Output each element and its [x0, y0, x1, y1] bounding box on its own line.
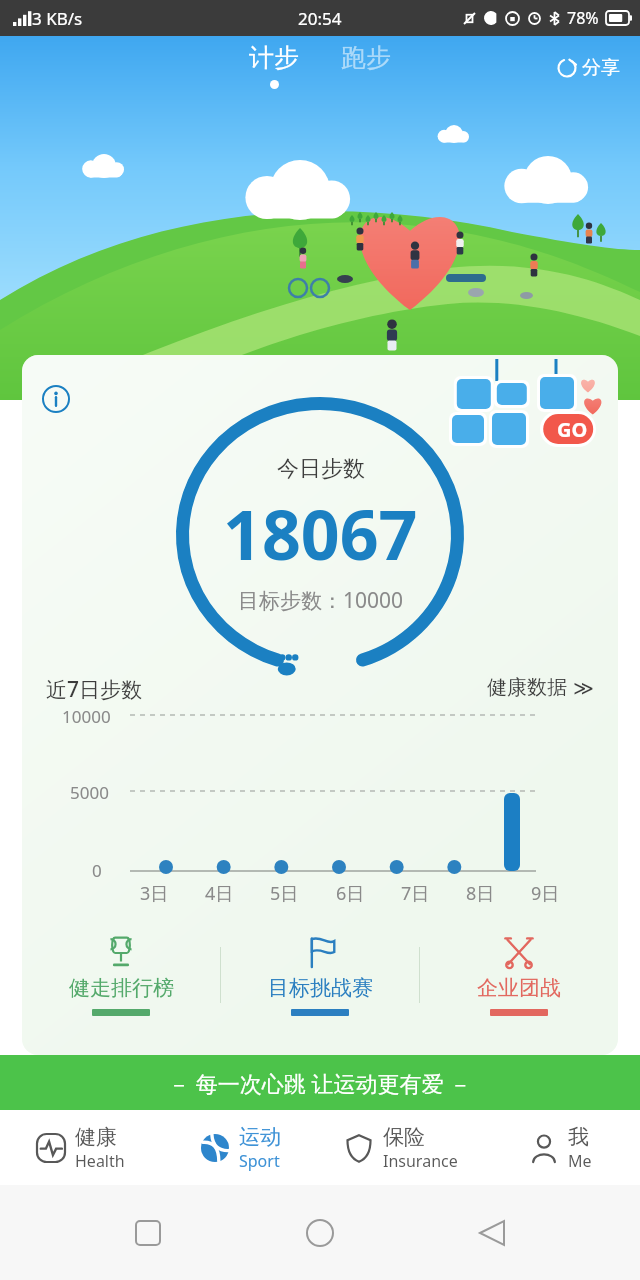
staticText: 近7日步数	[46, 675, 143, 704]
button[interactable]: 健走排行榜	[22, 929, 220, 1022]
staticText: 20:54	[298, 7, 342, 30]
staticText: 4日	[205, 881, 234, 906]
staticText: 跑步	[341, 42, 391, 73]
staticText: 10000	[62, 705, 111, 728]
button[interactable]: Info	[42, 385, 70, 413]
staticText: 6日	[336, 881, 365, 906]
staticText: Me	[568, 1150, 592, 1172]
button[interactable]: Back	[468, 1209, 516, 1257]
button[interactable]: 保险	[320, 1110, 480, 1185]
staticText: 7日	[401, 881, 430, 906]
staticText: 我	[568, 1124, 589, 1150]
staticText: 目标挑战赛	[268, 975, 373, 1001]
staticText: 18067	[223, 487, 418, 580]
button[interactable]: 健康	[0, 1110, 160, 1185]
staticText: ≫	[573, 676, 594, 699]
button[interactable]: 运动	[160, 1110, 320, 1185]
staticText: 3日	[140, 881, 169, 906]
staticText: 健康数据	[487, 675, 567, 700]
button[interactable]: Home	[296, 1209, 344, 1257]
staticText: 健康	[75, 1124, 117, 1150]
staticText: Sport	[239, 1150, 280, 1172]
staticText: 保险	[383, 1124, 425, 1150]
button[interactable]: Recents	[124, 1209, 172, 1257]
button[interactable]: 企业团战	[420, 929, 618, 1022]
staticText: Insurance	[383, 1150, 458, 1172]
staticText: 0	[92, 859, 102, 882]
button[interactable]: 计步	[243, 42, 305, 89]
staticText: 健走排行榜	[69, 975, 174, 1001]
staticText: 9日	[531, 881, 560, 906]
staticText: GO	[557, 416, 588, 443]
staticText: Health	[75, 1150, 125, 1172]
staticText: 8日	[466, 881, 495, 906]
staticText: 目标步数：10000	[238, 586, 404, 615]
staticText: 企业团战	[477, 975, 561, 1001]
staticText: 78%	[567, 7, 599, 29]
staticText: 3 KB/s	[32, 7, 83, 30]
staticText: 5日	[270, 881, 299, 906]
staticText: 计步	[249, 42, 299, 73]
staticText: － 每一次心跳 让运动更有爱 －	[168, 1068, 472, 1098]
button[interactable]: 分享	[553, 52, 624, 84]
staticText: 5000	[70, 781, 109, 804]
staticText: 今日步数	[277, 455, 365, 483]
staticText: 运动	[239, 1124, 281, 1150]
button[interactable]: 健康数据	[487, 675, 594, 700]
button[interactable]: 跑步	[335, 42, 397, 73]
button[interactable]: 我	[480, 1110, 640, 1185]
staticText: 分享	[582, 56, 620, 80]
button[interactable]: 目标挑战赛	[221, 929, 419, 1022]
